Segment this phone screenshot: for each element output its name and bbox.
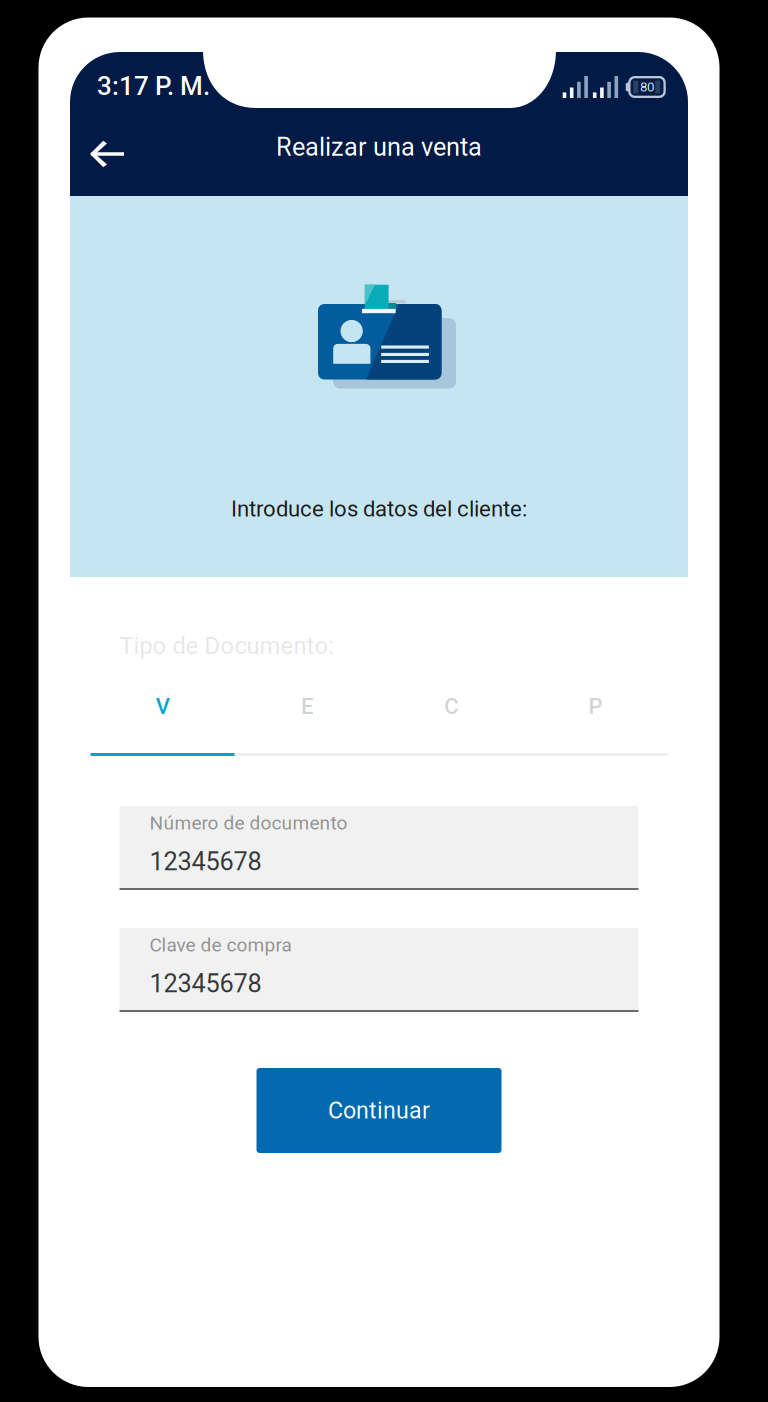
staticText: E <box>301 694 313 719</box>
staticText: 3:17 P. M. <box>97 71 210 101</box>
staticText: 80 <box>640 79 654 95</box>
staticText: C <box>444 694 458 719</box>
button[interactable]: Clave de compra <box>119 928 638 1012</box>
staticText: Realizar una venta <box>276 132 482 162</box>
staticText: P <box>588 694 602 719</box>
button[interactable]: V <box>90 682 235 730</box>
staticText: V <box>156 694 170 719</box>
staticText: Introduce los datos del cliente: <box>231 496 527 522</box>
button[interactable]: E <box>235 682 379 730</box>
button[interactable]: P <box>523 682 667 730</box>
staticText: Clave de compra <box>149 934 291 956</box>
staticText: Número de documento <box>149 812 347 834</box>
staticText: Continuar <box>328 1097 430 1124</box>
staticText: Tipo de Documento: <box>119 632 334 660</box>
button[interactable]: Back <box>70 127 144 181</box>
button[interactable]: Número de documento <box>119 806 638 890</box>
staticText: 12345678 <box>149 969 261 998</box>
button[interactable]: C <box>379 682 523 730</box>
staticText: 12345678 <box>149 847 261 876</box>
button[interactable]: Continuar <box>256 1068 501 1153</box>
